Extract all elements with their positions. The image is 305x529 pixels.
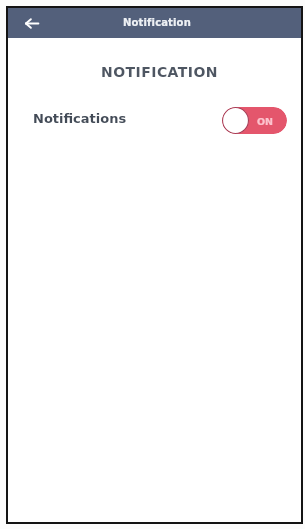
staticText: Notification bbox=[123, 17, 191, 29]
button[interactable]: Notifications toggle, on bbox=[222, 107, 287, 134]
staticText: NOTIFICATION bbox=[13, 64, 305, 80]
staticText: Notifications bbox=[33, 111, 127, 126]
button[interactable]: Back bbox=[20, 11, 44, 35]
staticText: ON bbox=[257, 116, 274, 127]
